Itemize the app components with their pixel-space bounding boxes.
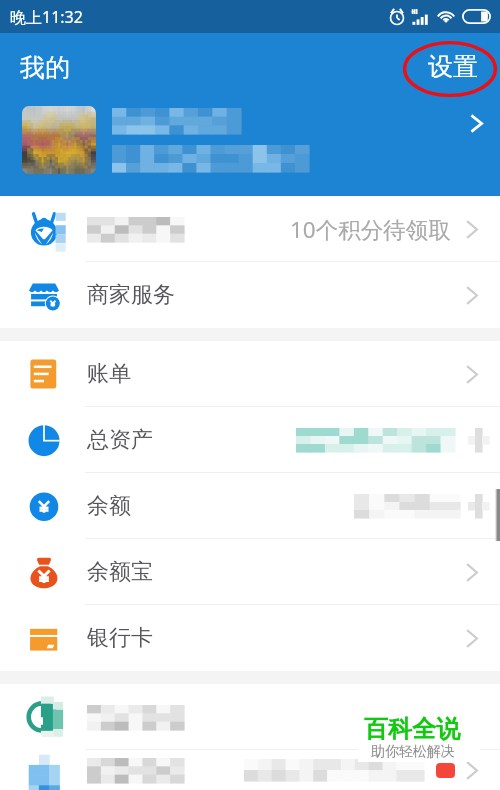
button[interactable]: 商家服务 [0,262,500,328]
staticText: 总资产 [87,426,153,454]
staticText: 晚上11:32 [10,6,83,28]
button[interactable] [0,750,500,790]
button[interactable]: 个人主页 [452,99,500,147]
staticText: 设置 [428,51,478,82]
button[interactable]: 总资产 [0,407,500,473]
staticText: 我的 [20,52,70,83]
staticText: 余额 [87,492,131,520]
staticText: 商家服务 [87,281,175,309]
button[interactable]: 10个积分待领取 [0,196,500,262]
staticText: 百科全说 [364,714,460,744]
button[interactable]: 银行卡 [0,605,500,671]
button[interactable]: 设置 [421,45,485,87]
staticText: 账单 [87,360,131,388]
staticText: 助你轻松解决 [371,743,455,761]
button[interactable]: 账单 [0,341,500,407]
staticText: 银行卡 [87,624,153,652]
button[interactable] [0,102,500,178]
staticText: 余额宝 [87,558,153,586]
button[interactable] [0,684,500,750]
button[interactable]: 余额 [0,473,500,539]
button[interactable]: 余额宝 [0,539,500,605]
staticText: 10个积分待领取 [290,214,451,245]
